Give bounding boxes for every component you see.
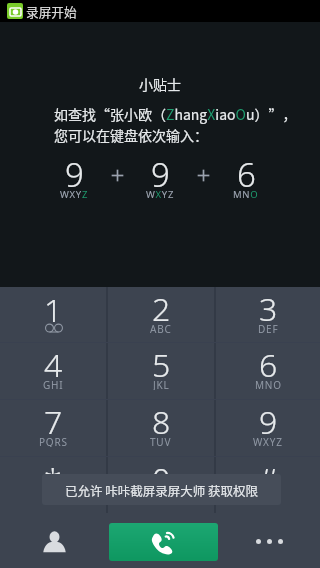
button[interactable]: 6 [216,343,320,399]
button[interactable]: 5 [108,343,214,399]
staticText: 已允许 咔咔截屏录屏大师 获取权限 [65,481,259,499]
staticText: ABC [150,322,172,333]
staticText: 9 [151,152,170,197]
staticText: 如查找“张小欧（ZhangXiaoOu）”， [54,104,297,124]
button[interactable]: 2 [108,287,214,342]
staticText: 6 [237,152,256,197]
staticText: WXYZ [253,435,283,447]
staticText: 6 [259,343,278,387]
button[interactable]: 9 [216,400,320,456]
button[interactable]: 0 [108,457,214,513]
button[interactable]: 7 [0,400,106,456]
button[interactable]: 3 [216,287,320,342]
staticText: MNO [255,378,282,390]
staticText: * [44,457,62,501]
staticText: + [158,492,165,504]
staticText: 9 [65,152,84,197]
staticText: # [258,457,279,501]
staticText: 1 [44,288,63,332]
staticText: 2 [152,287,171,331]
staticText: 7 [44,400,63,444]
staticText: 4 [44,343,63,387]
staticText: TUV [150,435,172,447]
staticText: 录屏开始 [26,2,77,20]
button[interactable]: * [0,457,106,513]
staticText: 3 [259,287,278,331]
staticText: WXYZ [60,188,89,201]
button[interactable]: 8 [108,400,214,456]
staticText: PQRS [39,435,68,447]
button[interactable]: 4 [0,343,106,399]
staticText: 小贴士 [139,74,181,94]
button[interactable]: More options [247,519,291,563]
button[interactable]: 1 [0,287,106,342]
staticText: DEF [258,322,279,333]
button[interactable]: Contacts [32,519,76,563]
staticText: WXYZ [146,188,175,201]
staticText: 5 [152,343,171,387]
staticText: 9 [259,400,278,444]
button[interactable]: # [216,457,320,513]
staticText: 8 [152,400,171,444]
staticText: 0 [152,457,171,501]
staticText: 您可以在键盘依次输入： [54,125,208,145]
button[interactable]: Call [109,523,218,561]
staticText: MNO [233,188,259,201]
staticText: GHI [43,378,64,390]
staticText: JKL [153,378,170,390]
